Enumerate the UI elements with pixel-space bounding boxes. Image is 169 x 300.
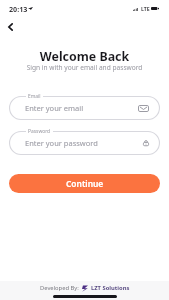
staticText: LZT Solutions	[91, 284, 130, 292]
staticText: Password	[28, 128, 51, 135]
staticText: Email	[28, 93, 41, 100]
staticText: Enter your email	[25, 103, 84, 113]
staticText: Sign in with your email and password	[0, 63, 169, 72]
button[interactable]: Email	[9, 96, 160, 120]
staticText: 20:13	[9, 4, 28, 14]
button[interactable]: Back	[1, 17, 20, 36]
staticText: LTE	[141, 5, 150, 12]
staticText: Welcome Back	[0, 48, 169, 65]
button[interactable]: Continue	[9, 174, 160, 193]
staticText: Enter your password	[25, 138, 98, 148]
staticText: Continue	[66, 178, 104, 189]
staticText: Developed By:	[40, 284, 79, 292]
button[interactable]: Password	[9, 131, 160, 155]
